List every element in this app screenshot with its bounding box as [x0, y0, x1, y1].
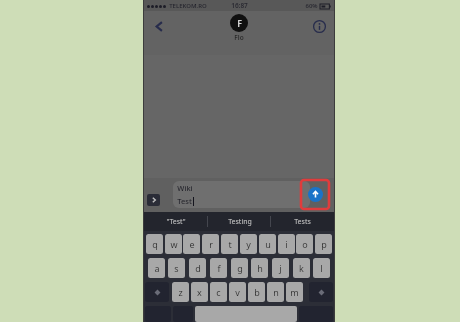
- button[interactable]: q: [146, 234, 163, 254]
- button[interactable]: v: [229, 282, 246, 302]
- staticText: b: [254, 286, 260, 298]
- staticText: w: [170, 238, 178, 250]
- button[interactable]: Testing: [208, 212, 271, 231]
- staticText: v: [235, 286, 240, 298]
- button[interactable]: Info: [306, 13, 332, 39]
- staticText: F: [237, 18, 242, 29]
- button[interactable]: "Test": [144, 212, 208, 231]
- button[interactable]: a: [148, 258, 165, 278]
- button[interactable]: Space: [195, 306, 297, 322]
- button[interactable]: o: [296, 234, 313, 254]
- button[interactable]: s: [168, 258, 185, 278]
- button[interactable]: t: [221, 234, 238, 254]
- button[interactable]: Tests: [271, 212, 334, 231]
- staticText: o: [302, 238, 308, 250]
- button[interactable]: x: [191, 282, 208, 302]
- button[interactable]: Contact Flo: [230, 14, 248, 32]
- staticText: 16:87: [231, 1, 248, 10]
- staticText: "Test": [166, 217, 186, 227]
- button[interactable]: z: [172, 282, 189, 302]
- staticText: q: [152, 238, 158, 250]
- button[interactable]: c: [210, 282, 227, 302]
- staticText: u: [265, 238, 271, 250]
- button[interactable]: y: [240, 234, 257, 254]
- staticText: h: [257, 262, 263, 274]
- staticText: f: [217, 262, 221, 274]
- staticText: g: [237, 262, 243, 274]
- button[interactable]: d: [189, 258, 206, 278]
- button[interactable]: b: [248, 282, 265, 302]
- staticText: z: [178, 286, 183, 298]
- staticText: y: [246, 238, 251, 250]
- button[interactable]: Back: [146, 13, 172, 39]
- button[interactable]: Expand options: [147, 194, 160, 206]
- button[interactable]: i: [278, 234, 295, 254]
- button[interactable]: k: [293, 258, 310, 278]
- staticText: 60%: [305, 2, 318, 10]
- button[interactable]: Wiki: [173, 181, 310, 208]
- staticText: x: [197, 286, 202, 298]
- staticText: Testing: [228, 217, 252, 227]
- staticText: j: [279, 262, 282, 274]
- staticText: Test: [177, 196, 192, 206]
- button[interactable]: h: [251, 258, 268, 278]
- staticText: Tests: [294, 217, 311, 227]
- staticText: k: [299, 262, 304, 274]
- staticText: i: [285, 238, 288, 250]
- button[interactable]: p: [315, 234, 332, 254]
- button[interactable]: g: [231, 258, 248, 278]
- staticText: n: [273, 286, 279, 298]
- button[interactable]: f: [210, 258, 227, 278]
- button[interactable]: Delete: [309, 282, 333, 302]
- staticText: Flo: [234, 33, 244, 42]
- button[interactable]: e: [183, 234, 200, 254]
- staticText: e: [189, 238, 195, 250]
- staticText: l: [320, 262, 323, 274]
- staticText: a: [154, 262, 160, 274]
- button[interactable]: l: [313, 258, 330, 278]
- staticText: t: [228, 238, 232, 250]
- button[interactable]: n: [267, 282, 284, 302]
- staticText: Wiki: [177, 183, 193, 193]
- button[interactable]: j: [272, 258, 289, 278]
- staticText: r: [209, 238, 213, 250]
- staticText: TELEKOM.RO: [169, 2, 207, 10]
- button[interactable]: Send: [301, 180, 329, 209]
- button[interactable]: w: [165, 234, 182, 254]
- staticText: c: [216, 286, 221, 298]
- staticText: p: [321, 238, 327, 250]
- button[interactable]: m: [286, 282, 303, 302]
- button[interactable]: u: [259, 234, 276, 254]
- staticText: m: [290, 286, 299, 298]
- staticText: d: [195, 262, 201, 274]
- button[interactable]: Shift: [145, 282, 169, 302]
- staticText: s: [174, 262, 179, 274]
- button[interactable]: r: [202, 234, 219, 254]
